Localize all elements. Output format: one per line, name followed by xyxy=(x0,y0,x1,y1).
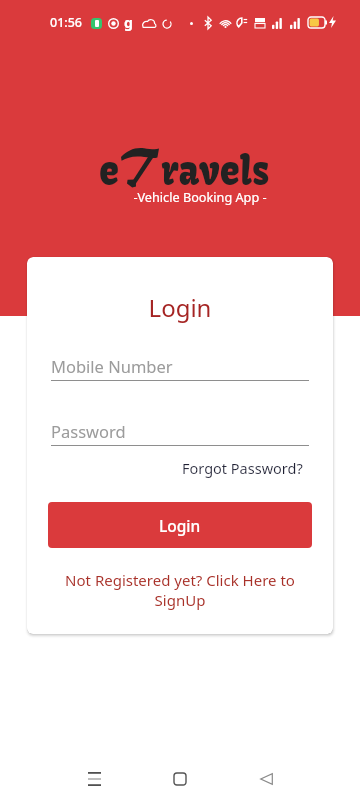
button[interactable]: Password xyxy=(51,421,309,443)
staticText: Not Registered yet? Click Here to SignUp xyxy=(51,570,309,610)
staticText: g xyxy=(124,13,133,32)
staticText: Login xyxy=(159,515,201,536)
staticText: Mobile Number xyxy=(51,355,173,377)
staticText: ravels xyxy=(161,146,270,196)
staticText: Forgot Password? xyxy=(182,458,303,478)
button[interactable]: Recent apps xyxy=(70,752,118,800)
staticText: e xyxy=(99,146,120,196)
staticText: Password xyxy=(51,420,126,442)
button[interactable]: Back xyxy=(242,752,290,800)
staticText: Login xyxy=(27,291,333,324)
button[interactable]: Forgot Password? xyxy=(182,458,303,478)
staticText: 01:56 xyxy=(50,14,83,31)
staticText: -Vehicle Booking App - xyxy=(133,188,267,205)
button[interactable]: Mobile Number xyxy=(51,356,309,378)
button[interactable]: Not Registered yet? Click Here to SignUp xyxy=(51,570,309,610)
button[interactable]: Home xyxy=(156,752,204,800)
button[interactable]: Login xyxy=(48,502,312,548)
